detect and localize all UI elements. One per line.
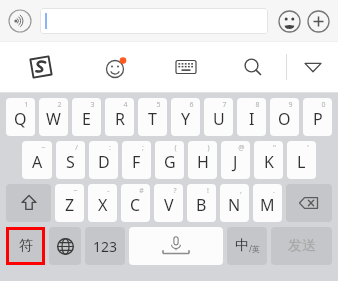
staticText: ? [173,186,177,196]
staticText: 2 [57,100,62,110]
staticText: 6 [189,100,194,110]
staticText: 5 [156,100,161,110]
button[interactable]: ~ [55,184,84,222]
button[interactable]: Emoji [276,8,302,34]
button[interactable]: 6 [171,98,200,136]
button[interactable]: " [254,141,283,179]
staticText: S [66,151,75,173]
staticText: H [197,151,209,173]
button[interactable]: : [89,141,118,179]
button[interactable]: Expression panel [82,42,152,92]
button[interactable]: 8 [237,98,266,136]
staticText: F [132,151,141,173]
staticText: Y [181,108,191,130]
button[interactable]: 3 [72,98,101,136]
staticText: /英 [249,243,260,254]
button[interactable]: 发送 [271,227,332,265]
staticText: - [107,186,110,196]
staticText: 7 [222,100,227,110]
staticText: 符 [19,237,33,255]
button[interactable]: Backspace [286,184,332,222]
staticText: Q [14,108,27,130]
staticText: ( [174,143,177,153]
staticText: , [240,186,242,196]
staticText: " [273,143,276,153]
button[interactable]: Sogou input [0,42,82,92]
button[interactable]: ; [122,141,151,179]
staticText: V [164,194,174,216]
staticText: A [32,151,43,173]
staticText: ) [207,143,210,153]
button[interactable]: # [121,184,150,222]
staticText: T [148,108,157,130]
staticText: M [260,194,275,216]
staticText: I [249,108,255,130]
button[interactable]: . [253,184,282,222]
button[interactable]: @ [221,141,250,179]
staticText: P [313,108,323,130]
button[interactable]: Search [220,42,286,92]
staticText: 4 [123,100,128,110]
staticText: ~ [41,143,46,153]
staticText: W [46,108,61,130]
button[interactable]: , [220,184,249,222]
button[interactable]: ~ [22,141,52,179]
button[interactable]: Switch language [49,227,81,265]
button[interactable]: 0 [303,98,332,136]
staticText: 3 [90,100,95,110]
button[interactable]: Hide keyboard [287,42,338,92]
staticText: 0 [321,100,326,110]
staticText: D [98,151,110,173]
staticText: 1 [24,100,29,110]
button[interactable]: 123 [85,227,125,265]
button[interactable]: Add [305,8,331,34]
button[interactable]: Space [129,227,223,265]
staticText: ' [307,143,309,153]
staticText: E [82,108,91,130]
button[interactable]: ' [287,141,316,179]
button[interactable]: 中 [227,227,267,265]
button[interactable]: ! [187,184,216,222]
staticText: / [75,143,78,153]
button[interactable] [40,8,268,34]
staticText: Z [65,194,75,216]
staticText: : [109,143,111,153]
button[interactable]: 1 [6,98,35,136]
button[interactable]: 5 [138,98,167,136]
staticText: X [98,194,108,216]
button[interactable]: ) [188,141,217,179]
button[interactable]: Voice input [7,8,33,34]
staticText: ! [207,186,209,196]
button[interactable]: 7 [204,98,233,136]
staticText: 9 [288,100,293,110]
staticText: K [264,151,274,173]
button[interactable]: Shift [6,184,51,222]
staticText: L [297,151,306,173]
button[interactable]: 9 [270,98,299,136]
staticText: G [164,151,176,173]
staticText: ; [142,143,144,153]
staticText: B [196,194,207,216]
button[interactable]: Keyboard layout [152,42,220,92]
staticText: 中 [235,237,249,255]
button[interactable]: ? [154,184,183,222]
staticText: 发送 [288,237,316,255]
staticText: J [233,151,238,173]
button[interactable]: 符 [6,227,45,265]
button[interactable]: 4 [105,98,134,136]
staticText: @ [238,143,245,153]
staticText: ~ [73,186,78,196]
button[interactable]: ( [155,141,184,179]
staticText: O [278,108,291,130]
staticText: N [228,194,241,216]
button[interactable]: - [88,184,117,222]
staticText: R [115,108,125,130]
staticText: # [139,186,144,196]
button[interactable]: 2 [39,98,68,136]
button[interactable]: / [56,141,85,179]
staticText: U [213,108,225,130]
staticText: . [273,186,275,196]
staticText: C [130,194,141,216]
staticText: 123 [93,237,118,256]
staticText: 8 [255,100,260,110]
